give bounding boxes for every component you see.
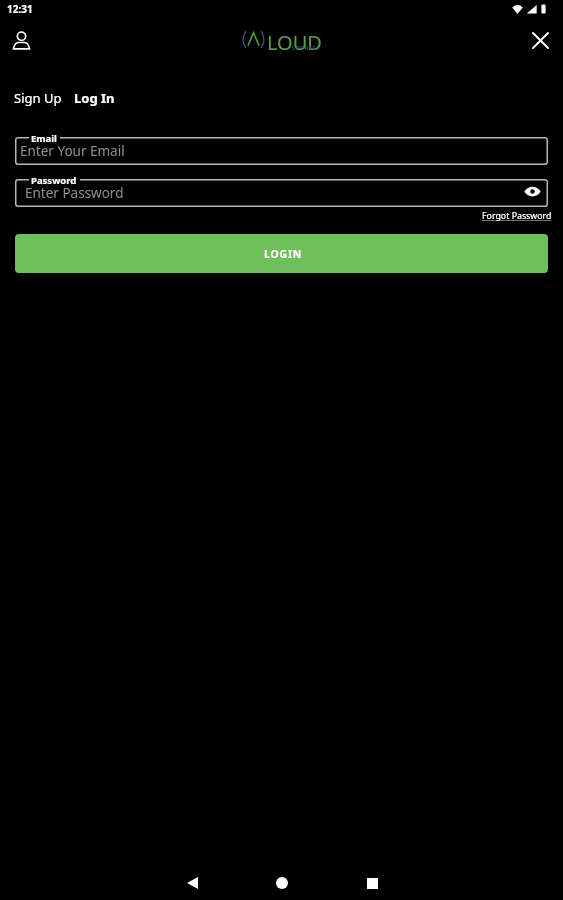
button[interactable]: Home [237, 862, 327, 900]
button[interactable]: Log In [73, 83, 116, 113]
button[interactable]: LOGIN [15, 234, 548, 273]
staticText: Sign Up [14, 89, 62, 107]
staticText: Log In [74, 89, 115, 107]
staticText: Email [31, 132, 57, 145]
staticText: 12:31 [7, 2, 33, 16]
button[interactable]: Show password [521, 182, 543, 204]
staticText: LOGIN [264, 247, 303, 261]
staticText: Enter Your Email [20, 142, 125, 160]
button[interactable]: Recents [327, 862, 417, 900]
button[interactable]: Close [524, 24, 556, 56]
button[interactable]: Sign Up [13, 83, 63, 113]
staticText: SPORTS [292, 44, 316, 52]
staticText: LOUD [267, 29, 322, 55]
button[interactable]: Back [147, 862, 237, 900]
button[interactable]: Forgot Password [482, 210, 552, 222]
button[interactable]: Profile [5, 24, 37, 56]
staticText: Enter Password [25, 184, 124, 202]
staticText: Password [31, 174, 77, 187]
staticText: Forgot Password [482, 210, 552, 222]
